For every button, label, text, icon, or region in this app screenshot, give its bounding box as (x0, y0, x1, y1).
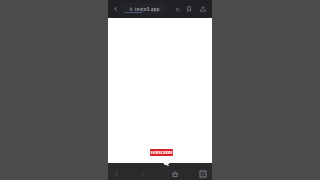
button[interactable]: Back (109, 0, 123, 18)
staticText: testx0.app (135, 6, 160, 13)
button[interactable]: Home (165, 168, 185, 180)
button[interactable]: Share (196, 0, 209, 18)
button[interactable]: SUBSCRIBE (150, 149, 173, 156)
button[interactable]: Bookmark (183, 0, 195, 18)
button[interactable]: Recents (193, 168, 213, 180)
button[interactable]: Back (108, 168, 125, 180)
button[interactable]: testx0.app (126, 0, 168, 18)
button[interactable]: Close (171, 0, 183, 18)
staticText: SUBSCRIBE (150, 150, 173, 155)
